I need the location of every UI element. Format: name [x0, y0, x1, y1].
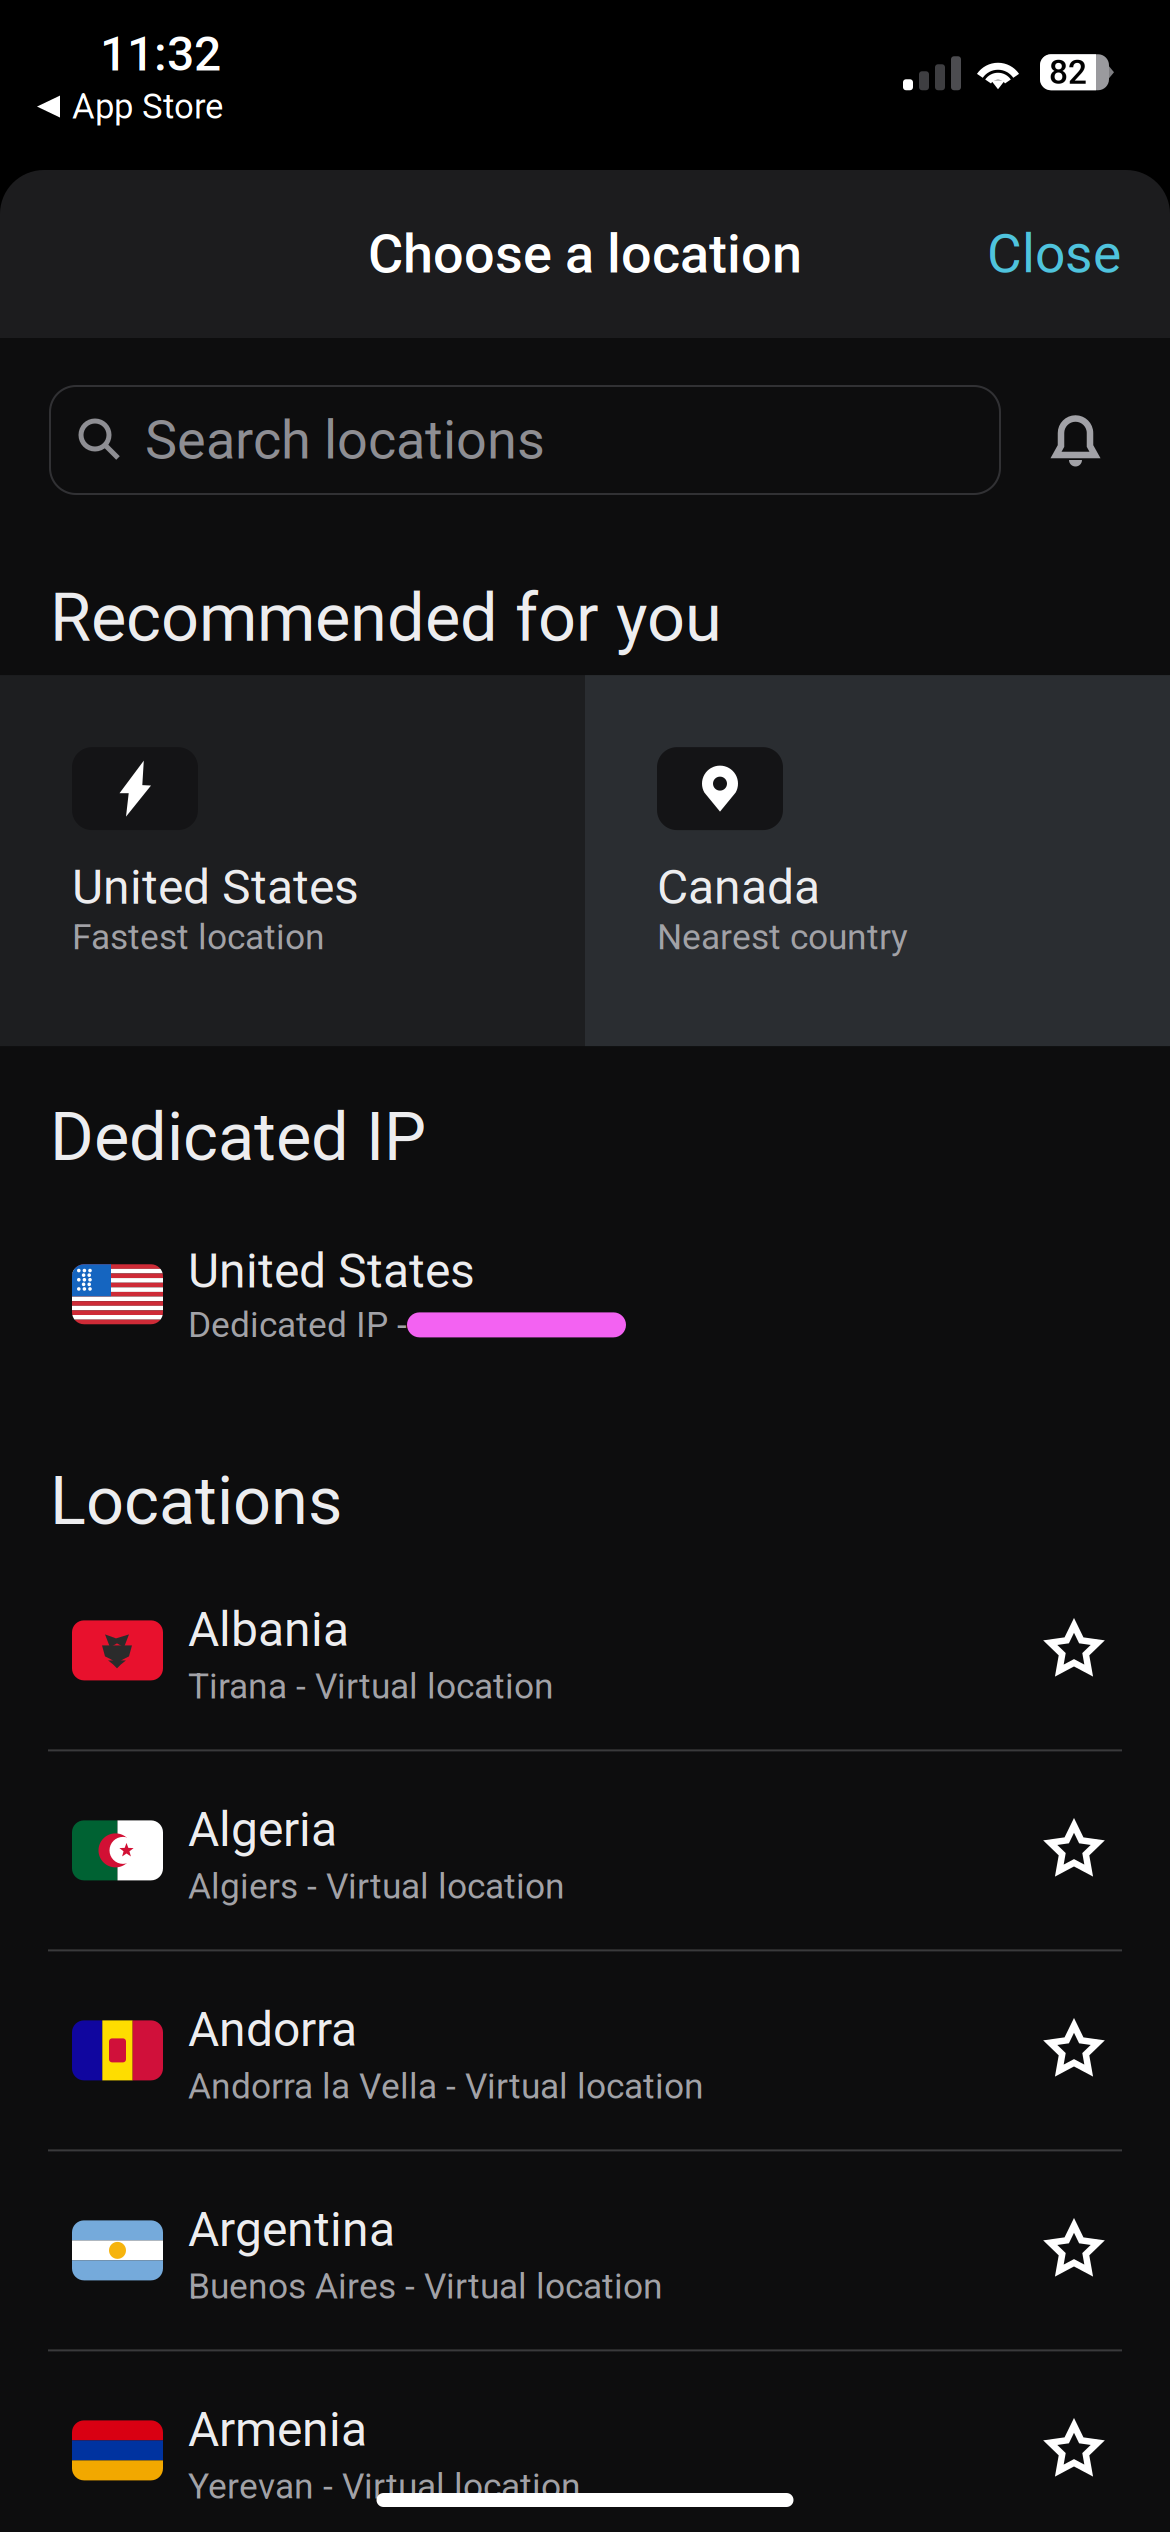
button[interactable]: Armenia	[0, 2351, 1170, 2532]
staticText: Argentina	[188, 2202, 395, 2258]
staticText: Recommended for you	[50, 579, 722, 657]
staticText: 11:32	[100, 26, 221, 82]
staticText: Nearest country	[657, 916, 908, 958]
staticText: Search locations	[145, 408, 545, 472]
staticText: Canada	[657, 859, 820, 915]
staticText: App Store	[72, 86, 223, 127]
button[interactable]: Canada	[585, 675, 1170, 1046]
button[interactable]: United States	[0, 1176, 1170, 1412]
button[interactable]: Albania	[0, 1551, 1170, 1749]
staticText: United States	[72, 859, 359, 915]
staticText: 82	[1049, 53, 1087, 92]
button[interactable]: Argentina	[0, 2151, 1170, 2349]
button[interactable]: Close	[963, 203, 1145, 305]
staticText: Dedicated IP	[50, 1098, 426, 1176]
button[interactable]: Andorra	[0, 1951, 1170, 2149]
staticText: Fastest location	[72, 916, 325, 958]
staticText: Choose a location	[368, 222, 802, 286]
staticText: Buenos Aires - Virtual location	[188, 2266, 663, 2307]
staticText: Armenia	[188, 2402, 367, 2458]
staticText: Locations	[50, 1462, 342, 1540]
button[interactable]: Algeria	[0, 1751, 1170, 1949]
staticText: Close	[987, 223, 1121, 285]
staticText: Andorra	[188, 2002, 357, 2058]
staticText: Andorra la Vella - Virtual location	[188, 2066, 704, 2107]
staticText: Albania	[188, 1602, 349, 1658]
staticText: United States	[188, 1243, 475, 1299]
staticText: Algiers - Virtual location	[188, 1866, 565, 1907]
button[interactable]: Notifications	[1000, 386, 1126, 494]
staticText: Tirana - Virtual location	[188, 1666, 554, 1707]
button[interactable]: United States	[0, 675, 585, 1046]
staticText: Yerevan - Virtual location	[188, 2466, 581, 2507]
staticText: Dedicated IP -	[188, 1304, 407, 1346]
staticText: Algeria	[188, 1802, 337, 1858]
